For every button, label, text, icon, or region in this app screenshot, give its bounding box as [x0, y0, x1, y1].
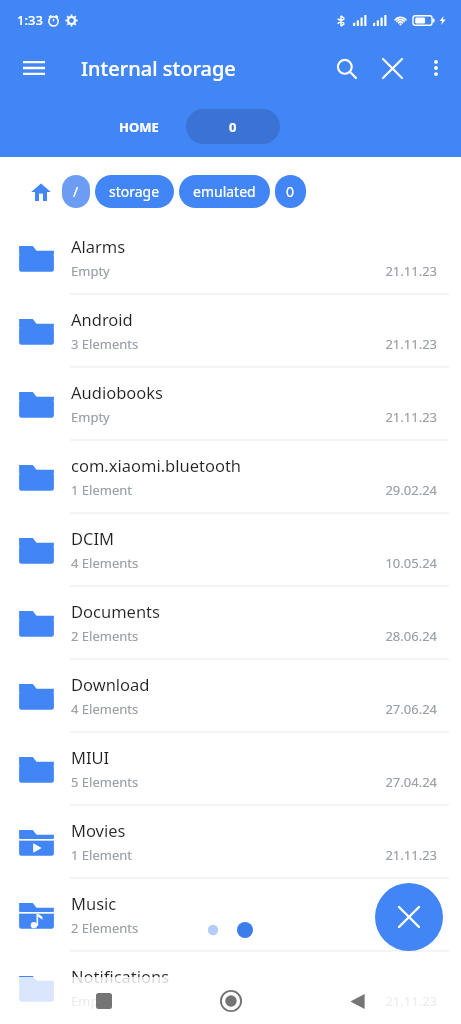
staticText: Android — [71, 308, 133, 330]
button[interactable]: Audiobooks — [0, 367, 461, 440]
staticText: 10.05.24 — [385, 554, 437, 572]
staticText: Empty — [71, 408, 110, 426]
staticText: 29.02.24 — [385, 481, 437, 499]
button[interactable]: HOME — [119, 118, 159, 136]
button[interactable]: com.xiaomi.bluetooth — [0, 440, 461, 513]
button[interactable]: Back — [335, 979, 379, 1023]
staticText: 21.11.23 — [385, 408, 437, 426]
button[interactable]: emulated — [179, 175, 270, 208]
staticText: MIUI — [71, 746, 110, 768]
button[interactable]: Home — [209, 979, 253, 1023]
button[interactable]: Notifications — [0, 951, 461, 1024]
button[interactable]: More options — [415, 47, 457, 89]
staticText: 2 Elements — [71, 627, 139, 645]
button[interactable]: / — [62, 175, 90, 208]
staticText: 1 Element — [71, 481, 132, 499]
staticText: 27.06.24 — [385, 700, 437, 718]
staticText: 21.11.23 — [385, 846, 437, 864]
staticText: / — [73, 182, 79, 201]
button[interactable]: Download — [0, 659, 461, 732]
staticText: 3 Elements — [71, 335, 139, 353]
button[interactable]: Documents — [0, 586, 461, 659]
button[interactable]: 0 — [275, 175, 306, 208]
button[interactable]: Close — [369, 45, 415, 91]
button[interactable]: storage — [95, 175, 174, 208]
staticText: Audiobooks — [71, 381, 163, 403]
staticText: 28.06.24 — [385, 627, 437, 645]
button[interactable]: Close selection — [375, 883, 443, 951]
button[interactable]: Recents — [82, 979, 126, 1023]
button[interactable]: Android — [0, 294, 461, 367]
button[interactable]: Music — [0, 878, 461, 951]
staticText: com.xiaomi.bluetooth — [71, 454, 242, 476]
staticText: HOME — [119, 118, 159, 136]
staticText: 0 — [286, 182, 295, 201]
staticText: 21.11.23 — [385, 992, 437, 1010]
staticText: 4 Elements — [71, 554, 139, 572]
staticText: 0 — [229, 118, 237, 136]
button[interactable]: MIUI — [0, 732, 461, 805]
staticText: Alarms — [71, 235, 126, 257]
staticText: 2 Elements — [71, 919, 139, 937]
button[interactable]: Alarms — [0, 221, 461, 294]
staticText: 1:33 — [17, 11, 43, 29]
staticText: 21.11.23 — [385, 335, 437, 353]
staticText: 21.11.23 — [385, 262, 437, 280]
staticText: Empty — [71, 262, 110, 280]
staticText: 1 Element — [71, 846, 132, 864]
staticText: 21.11.23 — [385, 919, 437, 937]
button[interactable]: Menu — [12, 46, 56, 90]
staticText: 27.04.24 — [385, 773, 437, 791]
staticText: 4 Elements — [71, 700, 139, 718]
button[interactable]: DCIM — [0, 513, 461, 586]
staticText: Notifications — [71, 965, 170, 987]
staticText: Empty — [71, 992, 110, 1010]
button[interactable]: 0 — [186, 109, 280, 144]
staticText: emulated — [193, 182, 256, 201]
staticText: Internal storage — [81, 55, 236, 82]
button[interactable]: Home — [24, 175, 58, 209]
staticText: Documents — [71, 600, 160, 622]
staticText: storage — [109, 182, 160, 201]
staticText: 5 Elements — [71, 773, 139, 791]
staticText: DCIM — [71, 527, 115, 549]
staticText: Movies — [71, 819, 126, 841]
button[interactable]: Search — [323, 45, 369, 91]
button[interactable]: Movies — [0, 805, 461, 878]
staticText: Music — [71, 892, 117, 914]
staticText: Download — [71, 673, 150, 695]
